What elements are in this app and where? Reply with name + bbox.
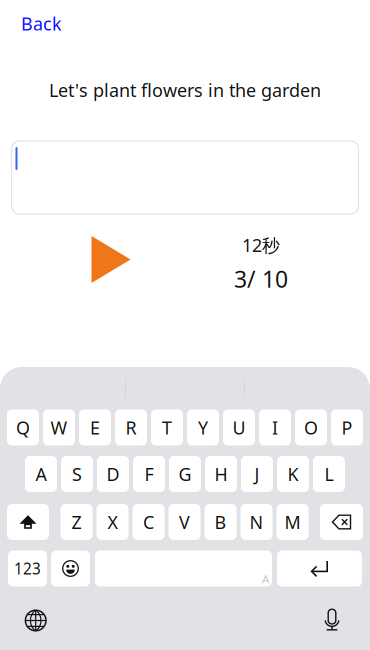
staticText: 3/ 10 [234,263,288,294]
staticText: Y [198,415,208,440]
button[interactable]: M [276,504,308,540]
button[interactable]: P [331,409,363,445]
staticText: L [324,462,333,486]
button[interactable]: C [132,504,164,540]
staticText: A [35,462,46,486]
staticText: F [144,462,153,486]
button[interactable]: E [79,409,111,445]
button[interactable]: A [25,456,57,492]
staticText: J [254,462,259,486]
button[interactable]: Z [60,504,92,540]
staticText: I [272,415,278,440]
staticText: T [162,415,172,440]
button[interactable]: Play audio [91,236,131,283]
staticText: B [214,510,226,534]
button[interactable]: O [295,409,327,445]
staticText: O [304,415,318,440]
button[interactable]: F [133,456,165,492]
button[interactable]: 123 [8,550,47,586]
staticText: Let's plant flowers in the garden [49,78,321,102]
button[interactable]: T [151,409,183,445]
staticText: M [284,510,300,534]
button[interactable]: N [240,504,272,540]
button[interactable]: S [61,456,93,492]
button[interactable]: R [115,409,147,445]
button[interactable]: Y [187,409,219,445]
button[interactable]: X [96,504,128,540]
button[interactable]: B [204,504,236,540]
staticText: S [72,462,82,486]
button[interactable]: I [259,409,291,445]
button[interactable]: L [313,456,345,492]
staticText: W [50,415,67,440]
staticText: C [143,510,154,534]
button[interactable]: Dictation [322,608,342,633]
button[interactable]: D [97,456,129,492]
button[interactable]: J [241,456,273,492]
button[interactable]: Emoji [51,550,90,586]
button[interactable]: V [168,504,200,540]
staticText: Back [21,11,62,36]
staticText: N [249,510,263,534]
staticText: V [179,510,190,534]
button[interactable]: U [223,409,255,445]
staticText: X [107,510,117,534]
staticText: R [125,415,136,440]
staticText: Q [16,415,30,440]
staticText: 12秒 [242,233,280,257]
button[interactable]: Shift [7,504,49,540]
staticText: G [178,462,191,486]
button[interactable]: Delete [320,504,363,540]
button[interactable]: space [95,550,272,586]
button[interactable]: H [205,456,237,492]
button[interactable]: Back [15,4,68,43]
button[interactable]: W [43,409,75,445]
button[interactable]: K [277,456,309,492]
staticText: H [214,462,227,486]
staticText: P [341,415,352,440]
staticText: E [90,415,100,440]
button[interactable]: Q [7,409,39,445]
staticText: 123 [14,558,41,579]
staticText: A [262,571,269,586]
button[interactable]: Return [277,550,362,586]
staticText: Z [71,510,81,534]
staticText: U [232,415,245,440]
staticText: D [106,462,119,486]
button[interactable]: G [169,456,201,492]
button[interactable]: Next keyboard [25,609,47,631]
staticText: K [287,462,298,486]
